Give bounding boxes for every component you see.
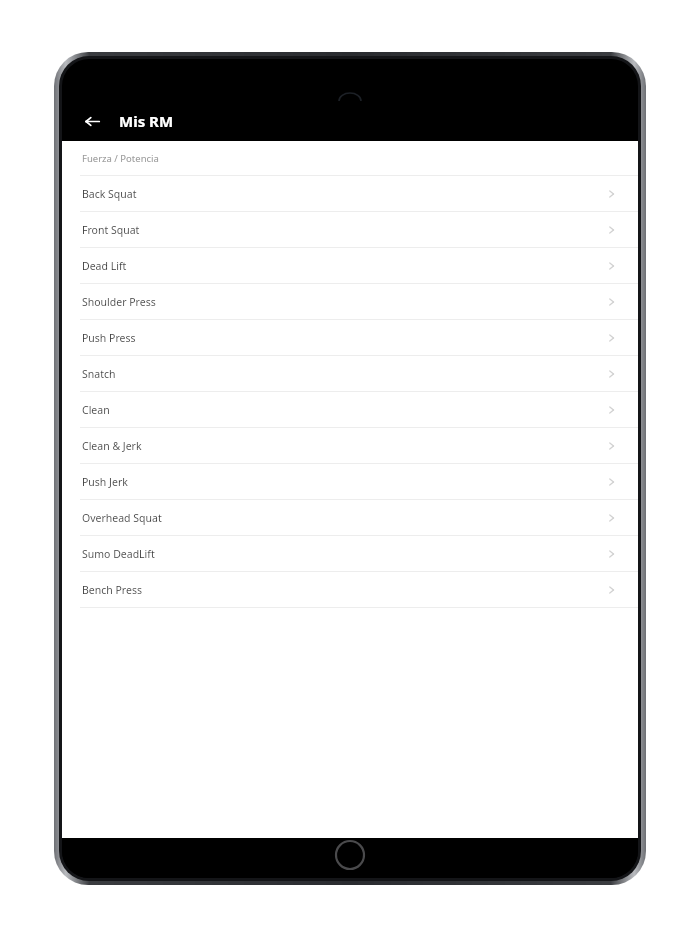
staticText: Clean: [82, 403, 110, 417]
staticText: Overhead Squat: [82, 511, 162, 525]
staticText: Dead Lift: [82, 259, 127, 273]
button[interactable]: Clean & Jerk: [62, 428, 638, 463]
staticText: Push Press: [82, 331, 136, 345]
staticText: Fuerza / Potencia: [82, 152, 159, 165]
button[interactable]: Snatch: [62, 356, 638, 391]
staticText: Front Squat: [82, 223, 140, 237]
button[interactable]: Dead Lift: [62, 248, 638, 283]
staticText: Shoulder Press: [82, 295, 156, 309]
button[interactable]: Back: [77, 106, 107, 136]
staticText: Mis RM: [119, 111, 174, 131]
button[interactable]: Clean: [62, 392, 638, 427]
button[interactable]: Bench Press: [62, 572, 638, 607]
button[interactable]: Overhead Squat: [62, 500, 638, 535]
staticText: Back Squat: [82, 187, 137, 201]
staticText: Snatch: [82, 367, 116, 381]
button[interactable]: Front Squat: [62, 212, 638, 247]
button[interactable]: Push Jerk: [62, 464, 638, 499]
button[interactable]: Sumo DeadLift: [62, 536, 638, 571]
staticText: Push Jerk: [82, 475, 128, 489]
button[interactable]: Push Press: [62, 320, 638, 355]
staticText: Bench Press: [82, 583, 142, 597]
staticText: Clean & Jerk: [82, 439, 142, 453]
button[interactable]: Back Squat: [62, 176, 638, 211]
staticText: Sumo DeadLift: [82, 547, 155, 561]
button[interactable]: Shoulder Press: [62, 284, 638, 319]
